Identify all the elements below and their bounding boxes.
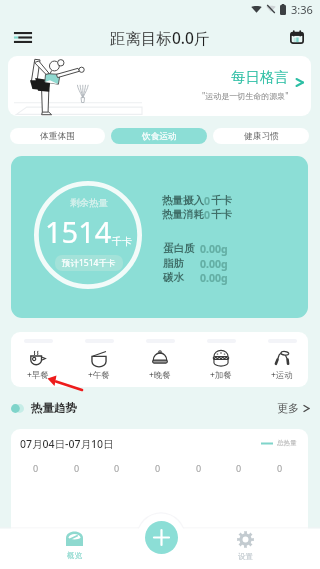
staticText: 千卡: [211, 208, 232, 221]
staticText: +早餐: [27, 369, 49, 381]
staticText: 每日格言: [231, 68, 289, 86]
staticText: 蛋白质: [163, 242, 195, 255]
button[interactable]: Menu: [6, 20, 40, 54]
staticText: 1514: [45, 212, 112, 251]
staticText: 0: [114, 462, 120, 474]
staticText: 热量消耗: [162, 208, 204, 221]
button[interactable]: 更多: [277, 401, 310, 415]
staticText: 体重体围: [40, 131, 75, 142]
button[interactable]: +运动: [260, 332, 304, 387]
staticText: 剩余热量: [70, 197, 108, 209]
button[interactable]: 概览: [54, 531, 94, 565]
button[interactable]: +加餐: [199, 332, 243, 387]
staticText: 碳水: [163, 271, 184, 284]
staticText: 更多: [277, 401, 299, 415]
staticText: 健康习惯: [244, 131, 279, 142]
staticText: 0: [74, 462, 80, 474]
button[interactable]: +晚餐: [138, 332, 182, 387]
staticText: +晚餐: [149, 369, 171, 381]
button[interactable]: Calendar: [280, 20, 314, 54]
staticText: 0: [155, 462, 161, 474]
button[interactable]: 健康习惯: [213, 128, 309, 144]
staticText: 0: [33, 462, 39, 474]
staticText: +加餐: [210, 369, 232, 381]
staticText: 0: [204, 194, 211, 208]
staticText: 0.00g: [200, 242, 228, 256]
staticText: 设置: [238, 552, 253, 561]
staticText: 热量趋势: [31, 401, 77, 415]
staticText: 0: [277, 462, 283, 474]
button[interactable]: 每日格言: [8, 56, 311, 116]
button[interactable]: +早餐: [16, 332, 60, 387]
staticText: +午餐: [88, 369, 110, 381]
button[interactable]: 体重体围: [10, 128, 105, 144]
button[interactable]: 饮食运动: [111, 128, 207, 144]
button[interactable]: +午餐: [77, 332, 121, 387]
staticText: 距离目标0.0斤: [110, 27, 210, 48]
staticText: 0: [204, 208, 211, 222]
staticText: 脂肪: [163, 257, 184, 270]
staticText: 0.00g: [200, 257, 228, 271]
staticText: 热量摄入: [162, 194, 204, 207]
staticText: 3:36: [291, 2, 313, 16]
staticText: 0: [196, 462, 202, 474]
staticText: 0.00g: [200, 271, 228, 285]
staticText: +运动: [271, 369, 293, 381]
staticText: 千卡: [211, 194, 232, 207]
staticText: 概览: [67, 551, 82, 560]
staticText: 总热量: [277, 439, 297, 447]
button[interactable]: Add: [145, 521, 178, 554]
staticText: "运动是一切生命的源泉": [202, 90, 289, 101]
staticText: 预计1514千卡: [62, 257, 116, 269]
staticText: 0: [236, 462, 242, 474]
staticText: 千卡: [112, 235, 132, 248]
button[interactable]: 设置: [225, 531, 265, 565]
staticText: 饮食运动: [142, 131, 177, 142]
staticText: 07月04日-07月10日: [20, 437, 114, 451]
